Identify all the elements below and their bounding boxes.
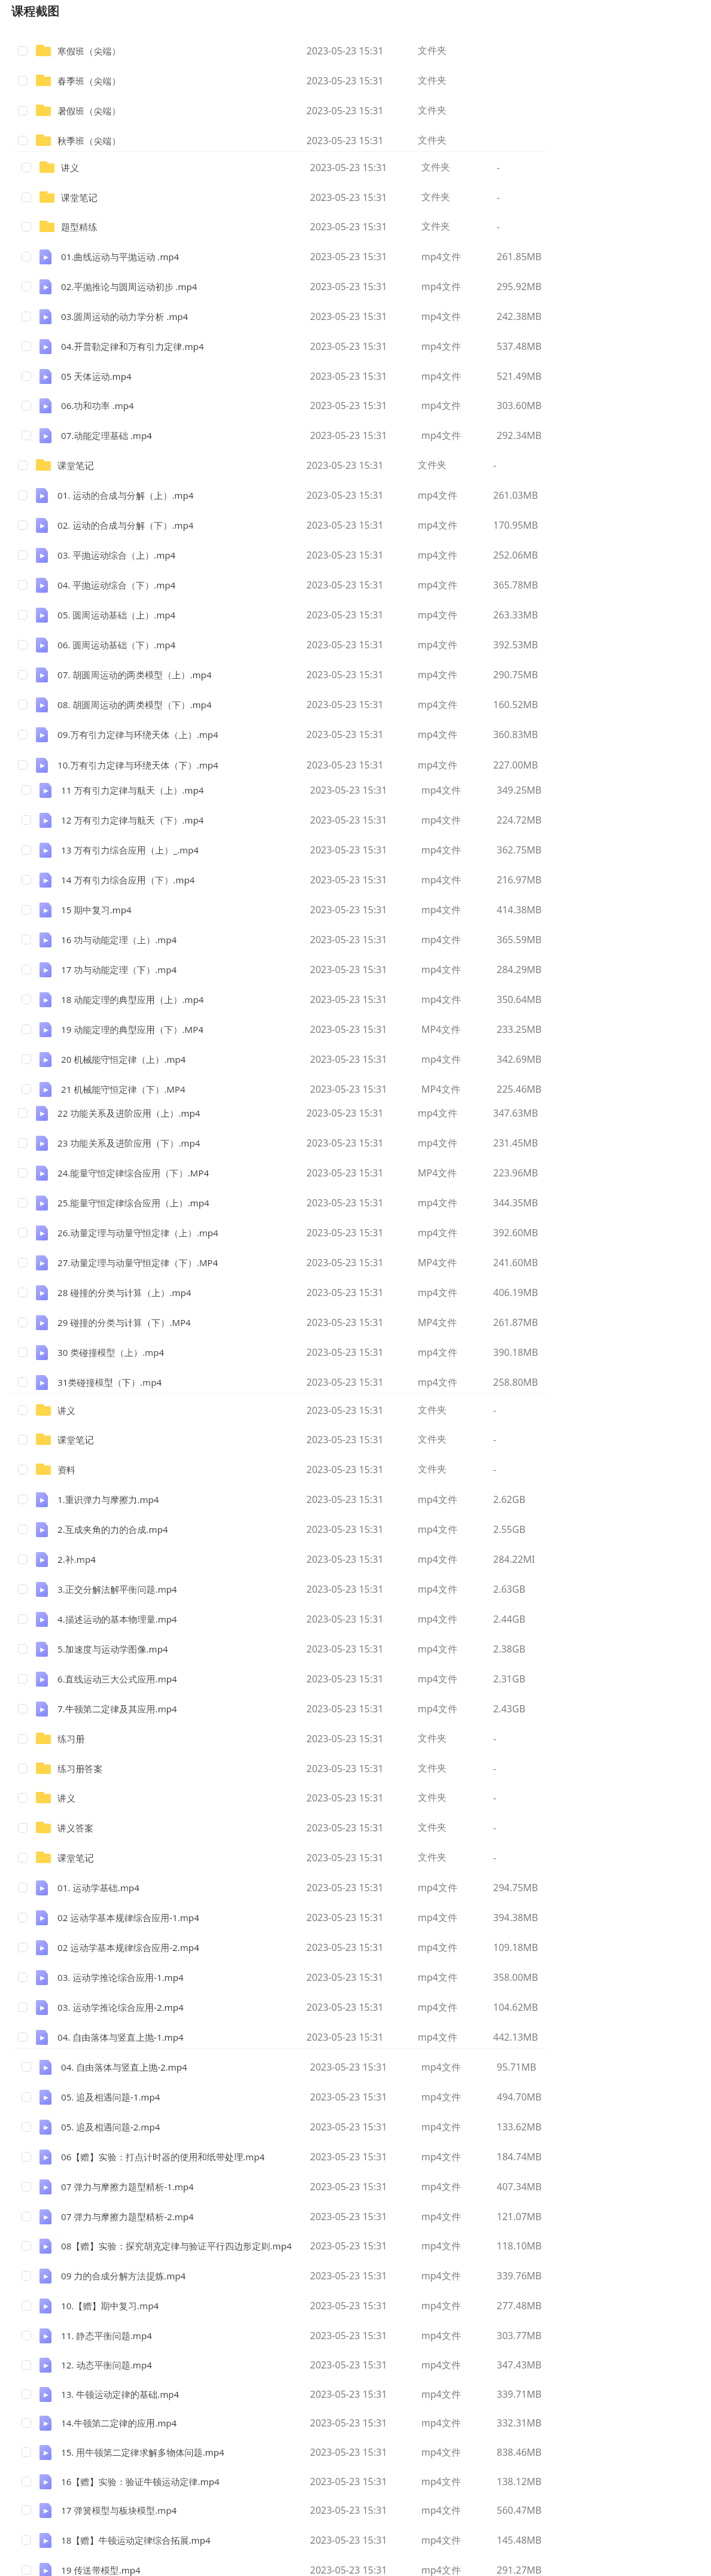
button[interactable]: 选择 03. 平抛运动综合（上）.mp4: [0, 543, 711, 567]
button[interactable]: 选择 05. 追及相遇问题-1.mp4: [0, 2085, 711, 2109]
button[interactable]: 选择 09 力的合成分解方法提炼.mp4: [0, 2264, 711, 2288]
button[interactable]: 选择 01.曲线运动与平抛运动 .mp4: [0, 245, 711, 269]
button[interactable]: 选择 01. 运动的合成与分解（上）.mp4: [0, 483, 711, 507]
button[interactable]: 选择 25.能量守恒定律综合应用（上）.mp4: [0, 1191, 711, 1215]
button[interactable]: 选择 6.直线运动三大公式应用.mp4: [18, 1674, 28, 1684]
button[interactable]: 选择 13. 牛顿运动定律的基础.mp4: [22, 2389, 31, 2399]
button[interactable]: 选择 08【赠】实验：探究胡克定律与验证平行四边形定则.mp4: [0, 2234, 711, 2258]
button[interactable]: 选择 31类碰撞模型（下）.mp4: [18, 1377, 28, 1387]
button[interactable]: 选择 31类碰撞模型（下）.mp4: [0, 1370, 711, 1394]
button[interactable]: 选择 23 功能关系及进阶应用（下）.mp4: [18, 1138, 28, 1148]
button[interactable]: 选择 02.平抛推论与圆周运动初步 .mp4: [22, 282, 31, 291]
button[interactable]: 选择 11 万有引力定律与航天（上）.mp4: [0, 778, 711, 802]
button[interactable]: 选择 10.万有引力定律与环绕天体（下）.mp4: [0, 753, 711, 777]
button[interactable]: 选择 6.直线运动三大公式应用.mp4: [0, 1667, 711, 1691]
button[interactable]: 选择 13 万有引力综合应用（上）_.mp4: [0, 838, 711, 862]
button[interactable]: 选择 25.能量守恒定律综合应用（上）.mp4: [18, 1198, 28, 1208]
button[interactable]: 选择 2.补.mp4: [0, 1547, 711, 1571]
button[interactable]: 选择 题型精练: [22, 222, 31, 231]
button[interactable]: 选择 07.动能定理基础 .mp4: [22, 431, 31, 440]
button[interactable]: 选择 寒假班（尖端）: [18, 46, 28, 56]
button[interactable]: 选择 17 弹簧模型与板块模型.mp4: [0, 2498, 711, 2522]
button[interactable]: 选择 08【赠】实验：探究胡克定律与验证平行四边形定则.mp4: [22, 2241, 31, 2251]
button[interactable]: 选择 23 功能关系及进阶应用（下）.mp4: [0, 1131, 711, 1155]
button[interactable]: 选择 07 弹力与摩擦力题型精析-2.mp4: [0, 2205, 711, 2229]
button[interactable]: 选择 24.能量守恒定律综合应用（下）.MP4: [0, 1161, 711, 1185]
button[interactable]: 选择 讲义: [0, 156, 711, 179]
button[interactable]: 选择 13. 牛顿运动定律的基础.mp4: [0, 2382, 711, 2406]
button[interactable]: 选择 11 万有引力定律与航天（上）.mp4: [22, 785, 31, 795]
button[interactable]: 选择 16【赠】实验：验证牛顿运动定律.mp4: [22, 2477, 31, 2486]
button[interactable]: 选择 暑假班（尖端）: [18, 106, 28, 115]
button[interactable]: 选择 06【赠】实验：打点计时器的使用和纸带处理.mp4: [22, 2152, 31, 2162]
button[interactable]: 选择 07. 胡圆周运动的两类模型（上）.mp4: [0, 663, 711, 687]
button[interactable]: 选择 06【赠】实验：打点计时器的使用和纸带处理.mp4: [0, 2145, 711, 2169]
button[interactable]: 选择 4.描述运动的基本物理量.mp4: [18, 1614, 28, 1624]
button[interactable]: 选择 14 万有引力综合应用（下）.mp4: [0, 868, 711, 892]
button[interactable]: 选择 06.功和功率 .mp4: [22, 401, 31, 410]
button[interactable]: 选择 3.正交分解法解平衡问题.mp4: [18, 1584, 28, 1594]
button[interactable]: 选择 资料: [18, 1465, 28, 1474]
button[interactable]: 选择 15 期中复习.mp4: [22, 905, 31, 914]
button[interactable]: 选择 14.牛顿第二定律的应用.mp4: [22, 2418, 31, 2428]
button[interactable]: 选择 16 功与动能定理（上）.mp4: [22, 935, 31, 944]
button[interactable]: 选择 题型精练: [0, 215, 711, 239]
button[interactable]: 选择 07. 胡圆周运动的两类模型（上）.mp4: [18, 670, 28, 679]
button[interactable]: 选择 课堂笔记: [18, 1435, 28, 1444]
button[interactable]: 选择 10.万有引力定律与环绕天体（下）.mp4: [18, 760, 28, 770]
button[interactable]: 选择 07 弹力与摩擦力题型精析-1.mp4: [0, 2175, 711, 2199]
button[interactable]: 选择 讲义答案: [18, 1823, 28, 1833]
button[interactable]: 选择 练习册答案: [0, 1757, 711, 1781]
button[interactable]: 选择 寒假班（尖端）: [0, 39, 711, 63]
button[interactable]: 选择 10.【赠】期中复习.mp4: [0, 2294, 711, 2318]
button[interactable]: 选择 讲义: [18, 1406, 28, 1415]
button[interactable]: 选择 14 万有引力综合应用（下）.mp4: [22, 875, 31, 885]
button[interactable]: 选择 课堂笔记: [0, 1428, 711, 1452]
button[interactable]: 选择 12. 动态平衡问题.mp4: [22, 2360, 31, 2370]
button[interactable]: 选择 课堂笔记: [22, 193, 31, 202]
button[interactable]: 选择 课堂笔记: [0, 185, 711, 209]
button[interactable]: 选择 1.重识弹力与摩擦力.mp4: [0, 1487, 711, 1511]
button[interactable]: 选择 01. 运动学基础.mp4: [0, 1876, 711, 1900]
button[interactable]: 选择 课堂笔记: [0, 453, 711, 477]
button[interactable]: 选择 暑假班（尖端）: [0, 99, 711, 123]
button[interactable]: 选择 06. 圆周运动基础（下）.mp4: [0, 633, 711, 657]
button[interactable]: 选择 05. 圆周运动基础（上）.mp4: [0, 603, 711, 627]
button[interactable]: 选择 02 运动学基本规律综合应用-2.mp4: [18, 1943, 28, 1952]
button[interactable]: 选择 04. 平抛运动综合（下）.mp4: [18, 580, 28, 590]
button[interactable]: 选择 05. 追及相遇问题-2.mp4: [0, 2115, 711, 2139]
button[interactable]: 选择 07 弹力与摩擦力题型精析-2.mp4: [22, 2212, 31, 2221]
button[interactable]: 选择 03. 运动学推论综合应用-2.mp4: [18, 2002, 28, 2012]
button[interactable]: 选择 3.正交分解法解平衡问题.mp4: [0, 1577, 711, 1601]
button[interactable]: 选择 19 传送带模型.mp4: [22, 2565, 31, 2575]
button[interactable]: 选择 04.开普勒定律和万有引力定律.mp4: [22, 342, 31, 351]
button[interactable]: 选择 01.曲线运动与平抛运动 .mp4: [22, 252, 31, 261]
button[interactable]: 选择 29 碰撞的分类与计算（下）.MP4: [18, 1318, 28, 1327]
button[interactable]: 选择 03. 运动学推论综合应用-2.mp4: [0, 1995, 711, 2019]
button[interactable]: 选择 24.能量守恒定律综合应用（下）.MP4: [18, 1168, 28, 1178]
button[interactable]: 选择 21 机械能守恒定律（下）.MP4: [22, 1084, 31, 1094]
button[interactable]: 选择 18【赠】牛顿运动定律综合拓展.mp4: [22, 2535, 31, 2545]
button[interactable]: 选择 练习册: [0, 1727, 711, 1751]
button[interactable]: 选择 09 力的合成分解方法提炼.mp4: [22, 2271, 31, 2281]
button[interactable]: 选择 16【赠】实验：验证牛顿运动定律.mp4: [0, 2470, 711, 2493]
button[interactable]: 选择 2.互成夹角的力的合成.mp4: [0, 1517, 711, 1541]
button[interactable]: 选择 02 运动学基本规律综合应用-2.mp4: [0, 1935, 711, 1959]
button[interactable]: 选择 03. 平抛运动综合（上）.mp4: [18, 550, 28, 560]
button[interactable]: 选择 15 期中复习.mp4: [0, 898, 711, 922]
button[interactable]: 选择 28 碰撞的分类与计算（上）.mp4: [18, 1288, 28, 1297]
button[interactable]: 选择 29 碰撞的分类与计算（下）.MP4: [0, 1310, 711, 1334]
button[interactable]: 选择 04. 自由落体与竖直上抛-2.mp4: [0, 2055, 711, 2079]
button[interactable]: 选择 21 机械能守恒定律（下）.MP4: [0, 1077, 711, 1101]
button[interactable]: 选择 04. 自由落体与竖直上抛-1.mp4: [18, 2032, 28, 2042]
button[interactable]: 选择 春季班（尖端）: [18, 76, 28, 86]
button[interactable]: 选择 12 万有引力定律与航天（下）.mp4: [22, 815, 31, 825]
button[interactable]: 选择 4.描述运动的基本物理量.mp4: [0, 1607, 711, 1631]
button[interactable]: 选择 09.万有引力定律与环绕天体（上）.mp4: [18, 730, 28, 739]
button[interactable]: 选择 秋季班（尖端）: [0, 129, 711, 153]
button[interactable]: 选择 03. 运动学推论综合应用-1.mp4: [18, 1973, 28, 1982]
button[interactable]: 选择 27.动量定理与动量守恒定律（下）.MP4: [0, 1251, 711, 1275]
button[interactable]: 选择 05. 追及相遇问题-1.mp4: [22, 2092, 31, 2102]
button[interactable]: 选择 08. 胡圆周运动的两类模型（下）.mp4: [0, 693, 711, 717]
button[interactable]: 选择 17 功与动能定理（下）.mp4: [0, 958, 711, 981]
